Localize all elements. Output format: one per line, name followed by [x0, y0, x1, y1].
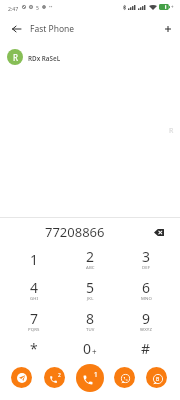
staticText: TUV: [86, 326, 95, 332]
button[interactable]: 0: [62, 335, 118, 366]
staticText: DEF: [142, 264, 151, 270]
staticText: 2:47: [8, 5, 19, 12]
staticText: +: [92, 346, 97, 357]
button[interactable]: R: [0, 44, 180, 69]
button[interactable]: Message: [146, 367, 167, 388]
staticText: 7: [30, 309, 39, 328]
staticText: ABC: [86, 264, 95, 270]
staticText: Fast Phone: [30, 23, 75, 35]
staticText: 77208866: [45, 223, 105, 241]
staticText: 1: [30, 250, 39, 269]
button[interactable]: Add contact: [158, 19, 178, 39]
button[interactable]: Backspace: [149, 222, 169, 242]
button[interactable]: 7: [6, 304, 62, 335]
staticText: 5: [36, 5, 39, 12]
button[interactable]: Call with SIM 1: [76, 364, 104, 392]
button[interactable]: 6: [118, 273, 174, 304]
button[interactable]: 1: [6, 242, 62, 273]
button[interactable]: Call with SIM 2: [44, 367, 65, 388]
button[interactable]: Back: [6, 19, 26, 39]
button[interactable]: Telegram: [11, 367, 32, 388]
staticText: MNO: [141, 295, 152, 301]
staticText: 0: [83, 339, 92, 358]
button[interactable]: 8: [62, 304, 118, 335]
staticText: GHI: [30, 295, 39, 301]
button[interactable]: 3: [118, 242, 174, 273]
staticText: *: [30, 339, 38, 358]
staticText: WXYZ: [140, 326, 153, 332]
button[interactable]: WhatsApp: [114, 367, 135, 388]
staticText: ••: [49, 4, 53, 10]
staticText: +: [171, 4, 174, 10]
staticText: 8: [86, 309, 95, 328]
staticText: 4: [30, 278, 39, 297]
staticText: 5: [86, 278, 95, 297]
staticText: B: [156, 376, 160, 383]
staticText: 2: [58, 372, 61, 379]
staticText: 9: [142, 309, 151, 328]
staticText: JKL: [87, 295, 94, 301]
staticText: 3: [142, 247, 151, 266]
staticText: RDx RaSeL: [28, 54, 61, 63]
staticText: R: [169, 126, 174, 136]
staticText: 6: [142, 278, 151, 297]
staticText: #: [141, 339, 151, 358]
button[interactable]: #: [118, 335, 174, 366]
staticText: R: [13, 52, 18, 63]
staticText: 2: [86, 247, 95, 266]
staticText: PQRS: [28, 326, 40, 332]
button[interactable]: *: [6, 335, 62, 366]
staticText: 1: [94, 370, 98, 379]
button[interactable]: 5: [62, 273, 118, 304]
button[interactable]: 4: [6, 273, 62, 304]
button[interactable]: 2: [62, 242, 118, 273]
button[interactable]: 9: [118, 304, 174, 335]
